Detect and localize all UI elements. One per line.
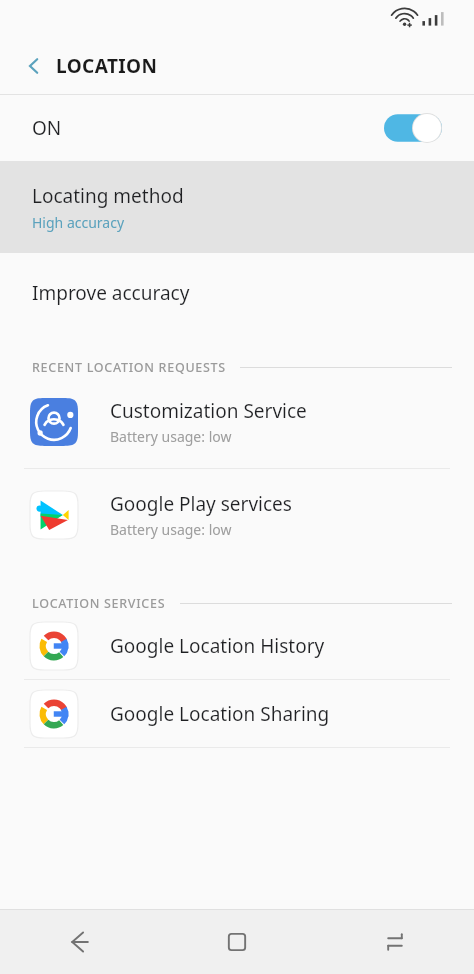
staticText: Google Location Sharing bbox=[110, 701, 330, 727]
button[interactable]: Locating method bbox=[0, 161, 474, 253]
staticText: Locating method bbox=[32, 183, 184, 209]
staticText: ON bbox=[32, 115, 62, 141]
button[interactable]: Back bbox=[0, 910, 158, 974]
button[interactable]: Google Location Sharing bbox=[0, 680, 474, 747]
button[interactable]: Home bbox=[158, 910, 316, 974]
staticText: High accuracy bbox=[32, 213, 125, 232]
staticText: Battery usage: low bbox=[110, 520, 232, 539]
staticText: Customization Service bbox=[110, 398, 307, 424]
button[interactable]: Customization Service bbox=[0, 376, 474, 468]
staticText: RECENT LOCATION REQUESTS bbox=[32, 359, 226, 376]
staticText: LOCATION SERVICES bbox=[32, 595, 166, 612]
staticText: LOCATION bbox=[56, 53, 158, 79]
staticText: Google Location History bbox=[110, 633, 325, 659]
staticText: Battery usage: low bbox=[110, 427, 232, 446]
staticText: Improve accuracy bbox=[32, 280, 190, 306]
button[interactable]: Recents bbox=[316, 910, 474, 974]
button[interactable]: ON bbox=[0, 95, 474, 161]
button[interactable]: Google Play services bbox=[0, 469, 474, 561]
button[interactable]: Improve accuracy bbox=[0, 253, 474, 333]
staticText: Google Play services bbox=[110, 491, 292, 517]
button[interactable]: Google Location History bbox=[0, 612, 474, 679]
button[interactable]: Back bbox=[12, 44, 56, 88]
